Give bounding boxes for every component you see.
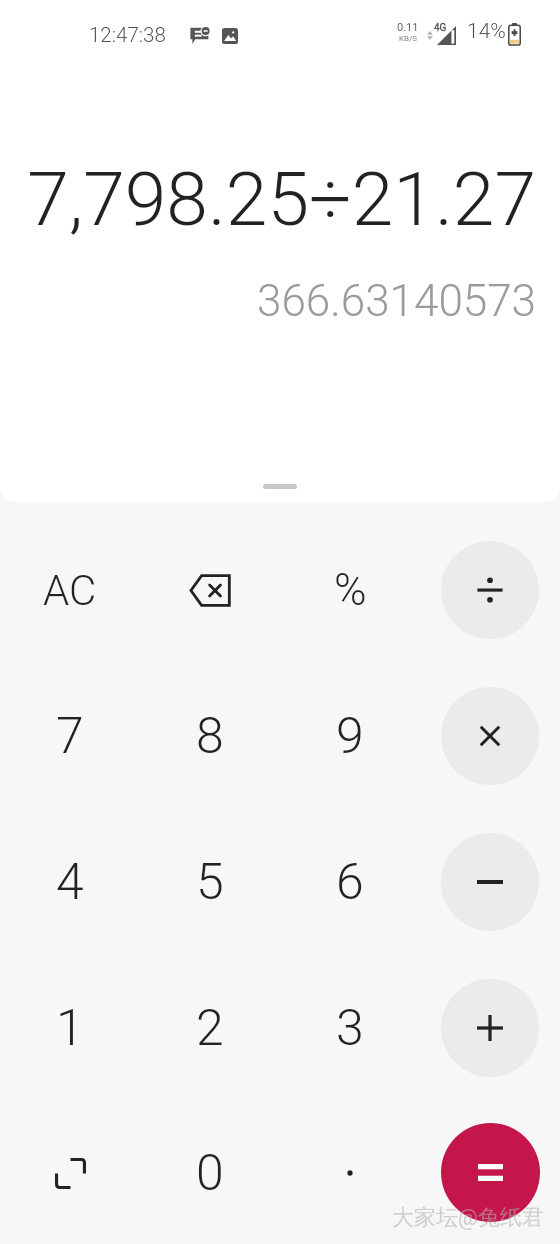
button[interactable]: Decimal point <box>290 1108 410 1238</box>
button[interactable]: 8 <box>150 671 270 801</box>
staticText: 8 <box>196 707 224 766</box>
button[interactable]: 9 <box>290 671 410 801</box>
button[interactable]: Add <box>441 979 539 1077</box>
staticText: 6 <box>336 853 364 912</box>
staticText: AC <box>43 566 97 615</box>
button[interactable]: Equals <box>441 1123 540 1222</box>
staticText: 4G <box>434 22 447 34</box>
staticText: 0.11 <box>397 21 419 34</box>
button[interactable]: 3 <box>290 963 410 1093</box>
staticText: 7,798.25÷21.27 <box>0 155 536 243</box>
staticText: 2 <box>196 999 224 1058</box>
staticText: 14% <box>467 19 506 44</box>
staticText: 0 <box>196 1144 224 1203</box>
staticText: 4 <box>56 853 84 912</box>
button[interactable]: Multiply <box>441 687 539 785</box>
staticText: 12:47:38 <box>89 23 166 47</box>
staticText: 3 <box>336 999 364 1058</box>
staticText: 1 <box>56 999 84 1058</box>
button[interactable]: Delete <box>150 525 270 655</box>
button[interactable]: AC <box>10 525 130 655</box>
button[interactable]: 6 <box>290 817 410 947</box>
button[interactable]: Scientific mode <box>10 1108 130 1238</box>
button[interactable]: 1 <box>10 963 130 1093</box>
staticText: 7 <box>56 707 84 766</box>
button[interactable]: 0 <box>150 1108 270 1238</box>
staticText: 9 <box>336 707 364 766</box>
button[interactable]: 2 <box>150 963 270 1093</box>
button[interactable]: 4 <box>10 817 130 947</box>
staticText: % <box>334 564 367 616</box>
button[interactable]: Subtract <box>441 833 539 931</box>
staticText: KB/S <box>399 34 418 43</box>
button[interactable]: 5 <box>150 817 270 947</box>
staticText: 5 <box>196 853 224 912</box>
button[interactable]: 7 <box>10 671 130 801</box>
staticText: 366.63140573 <box>0 275 536 327</box>
staticText: 大家坛@兔纸君 <box>392 1204 544 1232</box>
button[interactable]: % <box>290 525 410 655</box>
button[interactable]: Divide <box>441 541 539 639</box>
